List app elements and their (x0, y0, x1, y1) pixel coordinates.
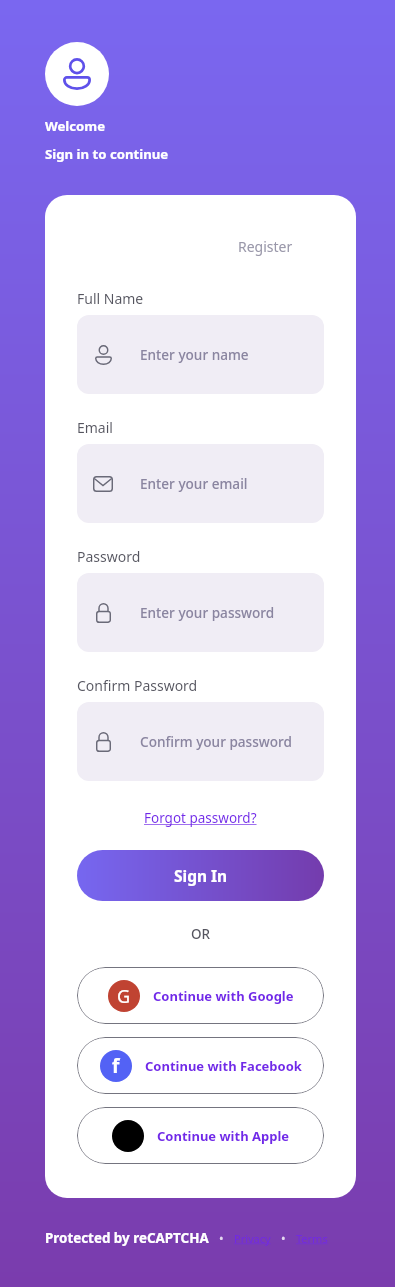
staticText: Terms (296, 1231, 328, 1246)
staticText: Sign In (174, 865, 228, 886)
button[interactable]: Privacy (234, 1231, 271, 1246)
staticText: Enter your name (140, 345, 249, 364)
button[interactable]: Register (203, 237, 327, 256)
button[interactable]: Enter your email (77, 444, 324, 523)
button[interactable]: Confirm your password (77, 702, 324, 781)
staticText: Privacy (234, 1231, 271, 1246)
staticText: Full Name (77, 289, 144, 307)
staticText: OR (191, 925, 211, 941)
staticText: Welcome (45, 117, 106, 135)
staticText: Enter your email (140, 474, 248, 493)
button[interactable]: G (77, 967, 324, 1024)
staticText: Continue with Facebook (145, 1057, 302, 1075)
button[interactable]: Continue with Apple (77, 1107, 324, 1164)
staticText: G (117, 984, 131, 1009)
button[interactable]: f (77, 1037, 324, 1094)
staticText: Register (238, 237, 293, 256)
staticText: Password (77, 547, 141, 565)
staticText: f (112, 1053, 120, 1079)
button[interactable]: Terms (296, 1231, 328, 1246)
staticText: • (281, 1230, 286, 1246)
staticText: Confirm Password (77, 676, 198, 694)
staticText: Sign in to continue (45, 145, 169, 163)
staticText: Enter your password (140, 603, 275, 622)
staticText: • (219, 1230, 224, 1246)
button[interactable]: Enter your name (77, 315, 324, 394)
staticText: Confirm your password (140, 732, 293, 751)
staticText: Forgot password? (144, 809, 257, 827)
staticText: Protected by reCAPTCHA (45, 1229, 209, 1247)
staticText: Continue with Apple (157, 1127, 290, 1145)
staticText: Email (77, 418, 113, 436)
staticText: Continue with Google (153, 987, 294, 1005)
button[interactable]: Enter your password (77, 573, 324, 652)
button[interactable]: Sign In (77, 850, 324, 901)
button[interactable]: Forgot password? (144, 809, 257, 827)
